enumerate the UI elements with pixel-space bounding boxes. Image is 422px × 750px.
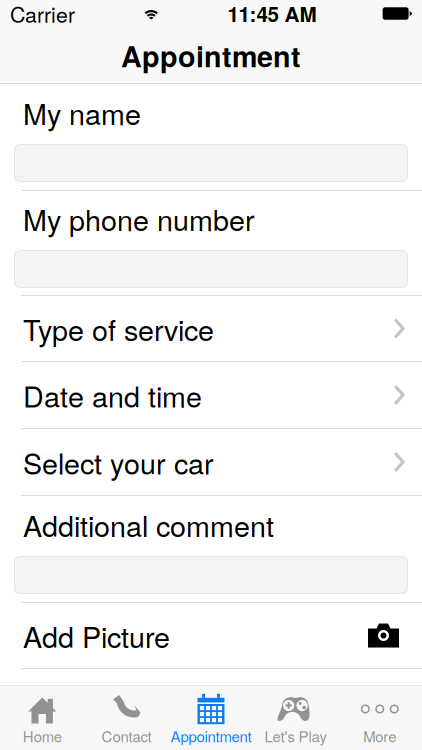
button[interactable]: Add Picture (0, 603, 422, 668)
staticText: More (363, 725, 396, 746)
button[interactable]: Select your car (0, 429, 422, 495)
button[interactable]: Home (0, 685, 84, 750)
staticText: Select your car (23, 441, 214, 483)
staticText: Date and time (23, 374, 202, 416)
staticText: Carrier (10, 0, 75, 29)
staticText: Appointment (121, 35, 301, 76)
button[interactable]: More (338, 685, 422, 750)
staticText: 11:45 AM (227, 0, 316, 28)
button[interactable]: Type of service (0, 296, 422, 361)
staticText: Home (23, 725, 62, 746)
staticText: Contact (102, 725, 152, 746)
staticText: Appointment (170, 725, 251, 746)
staticText: My name (23, 92, 141, 133)
staticText: Type of service (23, 308, 214, 349)
staticText: Let's Play (264, 725, 326, 746)
button[interactable]: Date and time (0, 362, 422, 428)
staticText: Add Picture (23, 615, 170, 656)
button[interactable]: Contact (84, 685, 169, 750)
staticText: My phone number (23, 198, 255, 239)
button[interactable]: Appointment (169, 685, 253, 750)
button[interactable]: Let's Play (253, 685, 338, 750)
staticText: Additional comment (23, 504, 274, 545)
